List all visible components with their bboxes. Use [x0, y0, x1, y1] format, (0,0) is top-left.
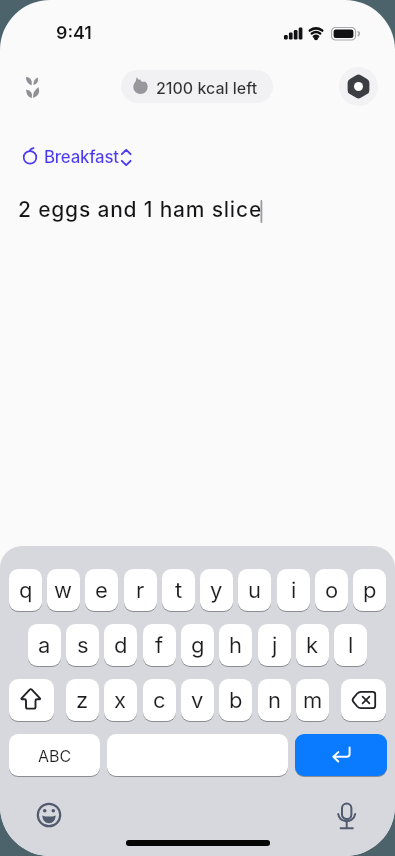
staticText: f — [155, 632, 164, 659]
staticText: 2100 kcal left — [156, 78, 258, 97]
staticText: j — [272, 632, 278, 659]
staticText: q — [19, 577, 33, 604]
staticText: k — [306, 632, 319, 659]
staticText: a — [38, 632, 51, 659]
staticText: c — [153, 687, 166, 714]
staticText: o — [325, 577, 339, 604]
staticText: b — [229, 687, 243, 714]
staticText: g — [191, 632, 205, 659]
staticText: t — [175, 577, 183, 604]
staticText: i — [291, 577, 297, 604]
staticText: 2 eggs and 1 ham slice — [18, 197, 263, 222]
staticText: ABC — [38, 746, 72, 765]
staticText: p — [363, 577, 377, 604]
staticText: r — [136, 577, 145, 604]
staticText: Breakfast — [44, 147, 119, 167]
staticText: s — [77, 632, 89, 659]
staticText: w — [54, 577, 73, 604]
staticText: n — [268, 687, 281, 714]
staticText: d — [114, 632, 128, 659]
staticText: m — [303, 687, 323, 714]
staticText: l — [348, 632, 354, 659]
staticText: u — [248, 577, 262, 604]
staticText: h — [229, 632, 243, 659]
staticText: e — [95, 577, 108, 604]
staticText: x — [114, 687, 127, 714]
staticText: v — [191, 687, 204, 714]
staticText: z — [76, 687, 89, 714]
staticText: y — [210, 577, 223, 604]
staticText: 9:41 — [56, 22, 92, 44]
